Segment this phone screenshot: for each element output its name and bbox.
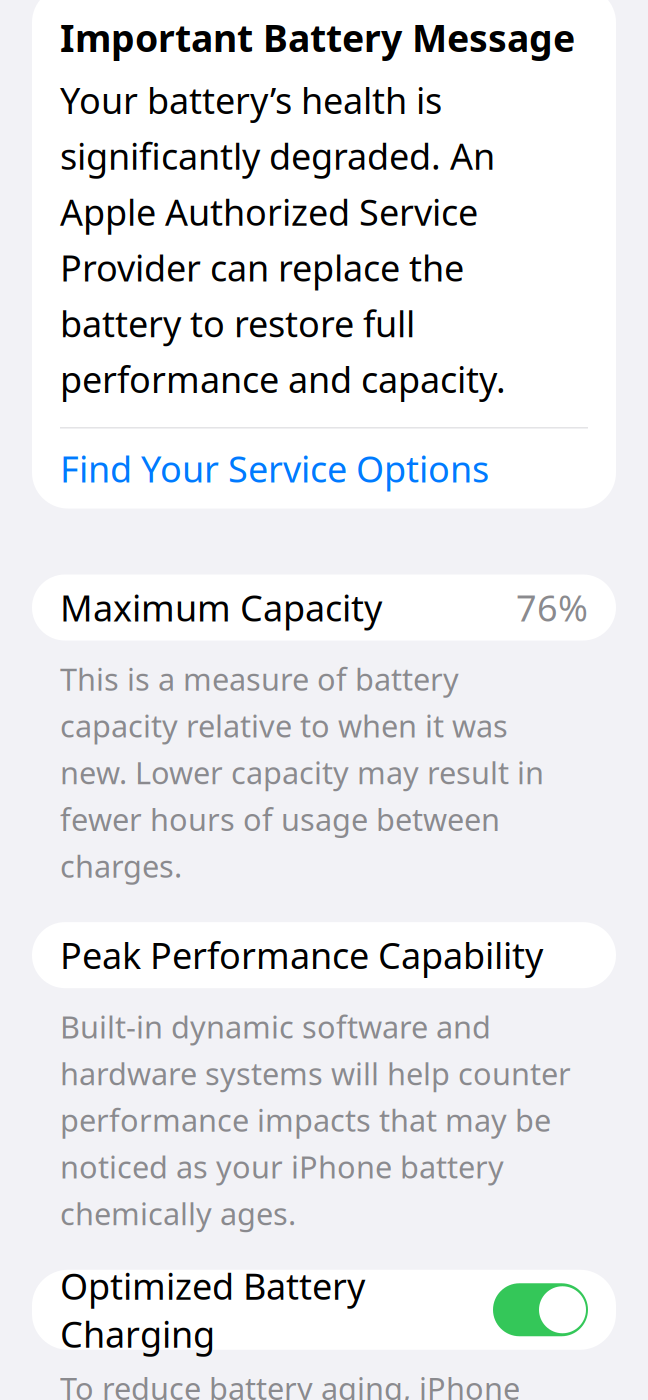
staticText: Peak Performance Capability xyxy=(60,931,543,979)
staticText: Your battery’s health is significantly d… xyxy=(60,76,506,403)
staticText: Maximum Capacity xyxy=(60,584,382,631)
staticText: Important Battery Message xyxy=(60,13,575,62)
button[interactable]: Maximum Capacity xyxy=(32,574,616,640)
staticText: Built-in dynamic software and hardware s… xyxy=(60,1006,571,1234)
button[interactable]: Peak Performance Capability xyxy=(32,922,616,988)
button[interactable]: Find Your Service Options xyxy=(60,450,588,486)
staticText: This is a measure of battery capacity re… xyxy=(60,658,544,886)
staticText: Optimized Battery Charging xyxy=(60,1262,365,1358)
staticText: Find Your Service Options xyxy=(60,445,489,492)
staticText: 76% xyxy=(516,584,588,631)
button[interactable]: Optimized Battery Charging xyxy=(32,1270,616,1350)
staticText: To reduce battery aging, iPhone learns f… xyxy=(60,1368,580,1400)
